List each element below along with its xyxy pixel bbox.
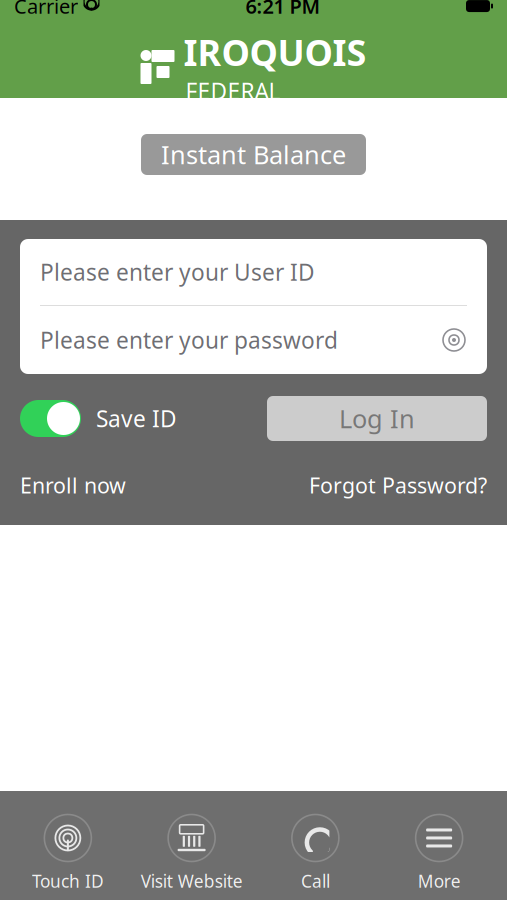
- staticText: Visit Website: [141, 869, 243, 892]
- button[interactable]: Instant Balance: [141, 134, 366, 175]
- staticText: More: [418, 869, 461, 892]
- staticText: Save ID: [96, 403, 177, 433]
- button[interactable]: Please enter your User ID: [20, 239, 487, 305]
- button[interactable]: Forgot Password?: [309, 471, 487, 499]
- staticText: Call: [301, 869, 330, 892]
- button[interactable]: Touch ID: [6, 814, 130, 892]
- staticText: IROQUOIS: [183, 28, 366, 76]
- button[interactable]: Save ID: [20, 400, 177, 437]
- button[interactable]: Enroll now: [20, 471, 126, 499]
- button[interactable]: Call: [253, 814, 377, 892]
- staticText: Touch ID: [32, 869, 104, 892]
- staticText: FEDERAL: [185, 76, 280, 106]
- button[interactable]: Please enter your password: [20, 306, 487, 374]
- button[interactable]: Visit Website: [130, 814, 254, 892]
- staticText: Instant Balance: [161, 138, 346, 171]
- button[interactable]: Log In: [267, 396, 487, 441]
- staticText: Please enter your User ID: [40, 257, 315, 287]
- staticText: Carrier: [14, 0, 78, 19]
- staticText: Enroll now: [20, 471, 126, 499]
- staticText: Log In: [339, 402, 415, 435]
- staticText: 6:21 PM: [245, 0, 320, 19]
- button[interactable]: More: [377, 814, 501, 892]
- staticText: Please enter your password: [40, 325, 338, 355]
- staticText: Forgot Password?: [309, 471, 487, 499]
